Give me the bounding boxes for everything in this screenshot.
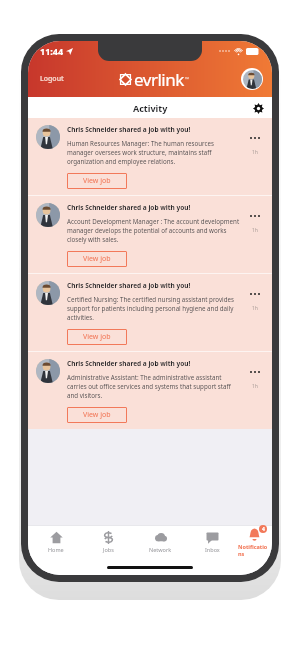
button[interactable]: Inbox <box>186 525 238 559</box>
staticText: 4 <box>262 526 265 533</box>
staticText: 1h <box>252 305 258 312</box>
staticText: View job <box>83 254 111 264</box>
button[interactable]: Chris Schneider shared a job with you! <box>28 196 272 273</box>
staticText: 1h <box>252 383 258 390</box>
staticText: Network <box>149 546 172 553</box>
button[interactable]: Network <box>134 525 186 559</box>
button[interactable]: Settings <box>249 99 267 117</box>
staticText: View job <box>83 332 111 342</box>
button[interactable]: More options <box>246 129 264 147</box>
staticText: Chris Schneider shared a job with you! <box>67 359 191 368</box>
button[interactable]: 4 <box>238 525 270 559</box>
staticText: View job <box>83 410 111 420</box>
staticText: Certified Nursing: The certified nursing… <box>67 295 241 322</box>
button[interactable]: View job <box>67 251 127 267</box>
button[interactable]: Chris Schneider shared a job with you! <box>28 118 272 195</box>
button[interactable]: Logout <box>37 71 67 87</box>
staticText: Jobs <box>103 546 114 553</box>
staticText: Inbox <box>205 546 220 553</box>
staticText: 1h <box>252 227 258 234</box>
button[interactable]: More options <box>246 207 264 225</box>
staticText: Chris Schneider shared a job with you! <box>67 203 191 212</box>
staticText: 1h <box>252 149 258 156</box>
staticText: Administrative Assistant: The administra… <box>67 373 241 400</box>
button[interactable]: View job <box>67 329 127 345</box>
staticText: evrlink <box>134 68 184 91</box>
staticText: 11:44 <box>40 45 64 57</box>
button[interactable]: Home <box>30 525 82 559</box>
button[interactable]: Chris Schneider shared a job with you! <box>28 352 272 429</box>
button[interactable]: Jobs <box>82 525 134 559</box>
staticText: Chris Schneider shared a job with you! <box>67 281 191 290</box>
staticText: View job <box>83 176 111 186</box>
staticText: Activity <box>133 102 168 114</box>
staticText: ™ <box>185 76 189 83</box>
staticText: Chris Schneider shared a job with you! <box>67 125 191 134</box>
button[interactable]: View job <box>67 407 127 423</box>
button[interactable]: View job <box>67 173 127 189</box>
button[interactable]: Profile <box>241 68 263 90</box>
staticText: Account Development Manager : The accoun… <box>67 217 241 244</box>
staticText: Human Resources Manager: The human resou… <box>67 139 241 166</box>
staticText: Logout <box>40 74 64 84</box>
button[interactable]: More options <box>246 285 264 303</box>
staticText: Notifications <box>238 543 270 557</box>
staticText: Home <box>48 546 64 553</box>
button[interactable]: Chris Schneider shared a job with you! <box>28 274 272 351</box>
button[interactable]: More options <box>246 363 264 381</box>
